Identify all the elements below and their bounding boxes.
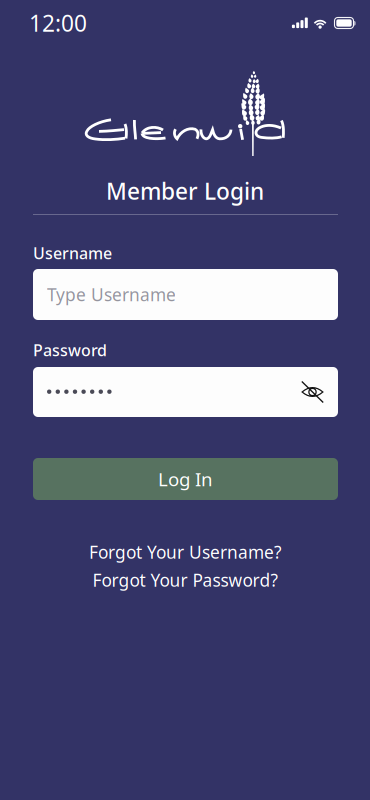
- staticText: Password: [33, 339, 107, 361]
- staticText: 12:00: [29, 8, 87, 38]
- staticText: Forgot Your Username?: [89, 540, 282, 563]
- button[interactable]: Log In: [33, 458, 338, 500]
- staticText: Member Login: [106, 176, 264, 206]
- button[interactable]: Forgot Your Username?: [33, 542, 338, 562]
- button[interactable]: Forgot Your Password?: [33, 570, 338, 590]
- staticText: Username: [33, 242, 112, 264]
- button[interactable]: Show password: [301, 381, 324, 402]
- staticText: Type Username: [47, 283, 176, 306]
- staticText: Log In: [158, 467, 213, 491]
- staticText: Forgot Your Password?: [92, 568, 278, 591]
